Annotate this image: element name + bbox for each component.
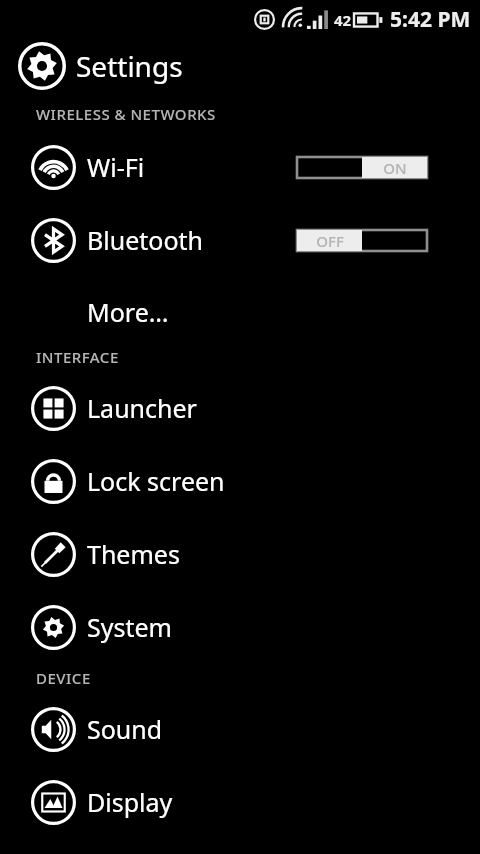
staticText: Themes xyxy=(87,537,180,571)
staticText: Display xyxy=(87,785,173,819)
staticText: Bluetooth xyxy=(87,223,204,257)
staticText: OFF xyxy=(316,231,344,251)
button[interactable]: Lock screen xyxy=(0,452,480,510)
button[interactable]: Launcher xyxy=(0,379,480,437)
button[interactable]: Bluetooth xyxy=(0,211,480,269)
staticText: 42 xyxy=(334,10,352,30)
other: Rotation xyxy=(254,9,275,30)
staticText: Sound xyxy=(87,712,163,746)
button[interactable]: Wi-Fi xyxy=(0,138,480,196)
button[interactable]: Sound xyxy=(0,700,480,758)
button[interactable]: More… xyxy=(0,283,480,341)
staticText: ON xyxy=(383,158,407,178)
button[interactable]: Switch on xyxy=(297,157,427,178)
staticText: Settings xyxy=(76,47,183,85)
button[interactable]: Themes xyxy=(0,525,480,583)
button[interactable]: Switch off xyxy=(297,230,427,251)
staticText: Wi-Fi xyxy=(87,150,145,184)
staticText: System xyxy=(87,610,172,644)
button[interactable]: Display xyxy=(0,773,480,831)
button[interactable]: System xyxy=(0,598,480,656)
staticText: More… xyxy=(87,295,169,329)
staticText: Launcher xyxy=(87,391,197,425)
button[interactable]: Settings xyxy=(0,38,480,94)
staticText: Lock screen xyxy=(87,464,225,498)
other: Battery xyxy=(354,12,382,28)
staticText: INTERFACE xyxy=(36,347,119,367)
staticText: WIRELESS & NETWORKS xyxy=(36,104,216,124)
staticText: DEVICE xyxy=(36,668,91,688)
staticText: 5:42 PM xyxy=(390,5,471,34)
